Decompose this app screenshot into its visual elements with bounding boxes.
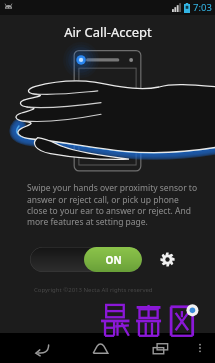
button[interactable]: Recent apps bbox=[145, 333, 175, 363]
button[interactable]: ON bbox=[30, 247, 142, 272]
staticText: Swipe your hands over proximity sensor t… bbox=[27, 182, 199, 228]
staticText: Air Call-Accept bbox=[64, 23, 152, 41]
staticText: Copyright ©2013 Necta All rights reserve… bbox=[34, 286, 153, 294]
staticText: ON bbox=[105, 253, 122, 267]
button[interactable]: More options bbox=[189, 337, 211, 359]
staticText: 7:03 bbox=[193, 1, 212, 14]
button[interactable]: Back bbox=[26, 333, 56, 363]
button[interactable]: Settings bbox=[156, 248, 178, 270]
button[interactable]: Home bbox=[85, 333, 115, 363]
